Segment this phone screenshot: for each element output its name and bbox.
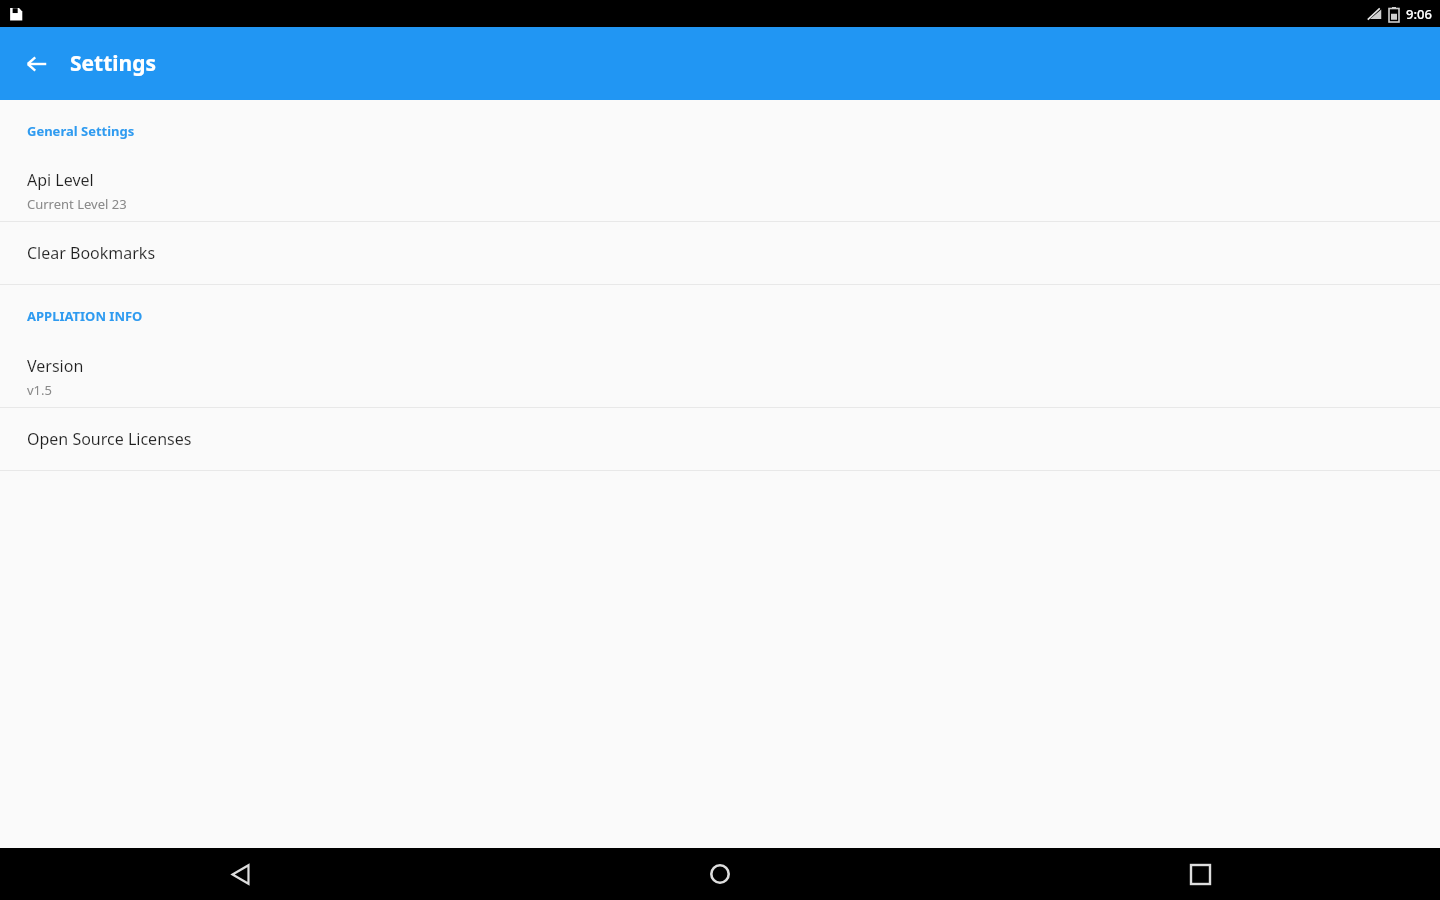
button[interactable]: Back: [19, 46, 55, 82]
staticText: APPLIATION INFO: [27, 307, 143, 325]
button[interactable]: Home: [480, 848, 960, 900]
button[interactable]: Open Source Licenses: [0, 408, 1440, 470]
staticText: General Settings: [27, 122, 135, 140]
button[interactable]: Version: [0, 347, 1440, 407]
button[interactable]: Api Level: [0, 161, 1440, 221]
staticText: 9:06: [1406, 5, 1432, 23]
staticText: Version: [27, 355, 84, 377]
staticText: Clear Bookmarks: [27, 242, 156, 264]
staticText: Current Level 23: [27, 195, 127, 213]
button[interactable]: Recent apps: [960, 848, 1440, 900]
button[interactable]: Back: [0, 848, 480, 900]
staticText: Settings: [70, 49, 157, 78]
button[interactable]: Clear Bookmarks: [0, 222, 1440, 284]
staticText: Open Source Licenses: [27, 428, 192, 450]
staticText: v1.5: [27, 381, 52, 399]
staticText: Api Level: [27, 169, 94, 191]
